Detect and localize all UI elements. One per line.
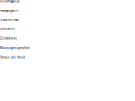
staticText: Zeitdiktion [0, 27, 14, 30]
staticText: Massagesignalton [0, 46, 30, 50]
staticText: Zeitdiktion [0, 36, 17, 40]
staticText: Status der Hand [0, 18, 19, 21]
staticText: Vormittagsdose [0, 0, 19, 3]
staticText: Massagesignalton [0, 9, 18, 12]
staticText: Status der Hand [0, 56, 25, 59]
